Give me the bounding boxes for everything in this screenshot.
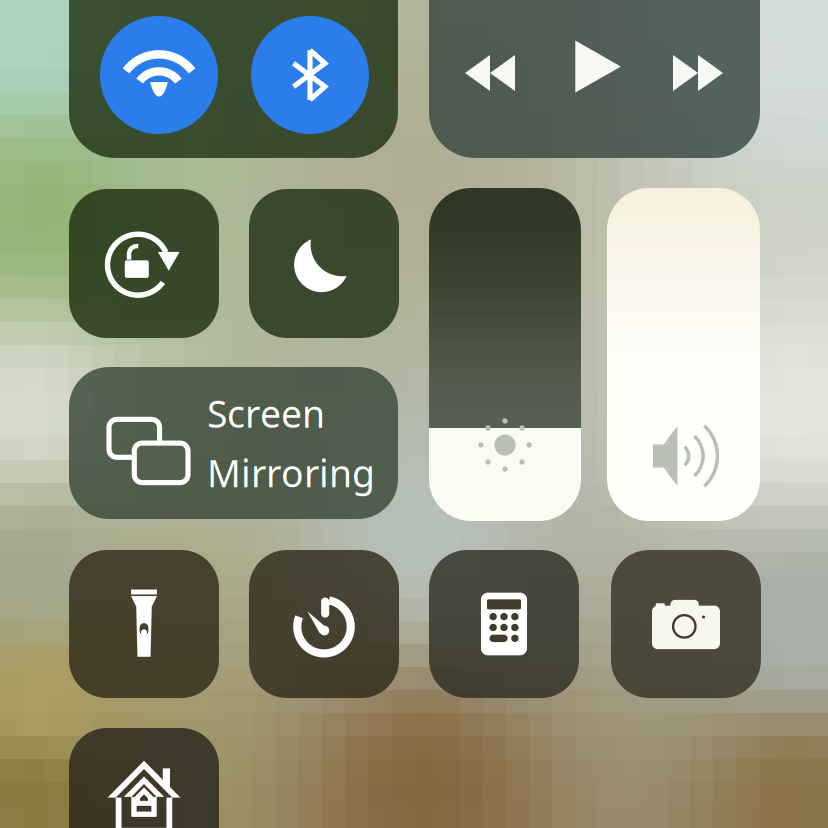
button[interactable]: Calculator: [429, 550, 579, 698]
button[interactable]: Timer: [249, 550, 399, 698]
button[interactable]: Home: [69, 728, 219, 828]
button[interactable]: Screen Mirroring: [69, 367, 398, 519]
staticText: Screen: [207, 388, 325, 438]
button[interactable]: Volume: [607, 188, 760, 521]
button[interactable]: Flashlight: [69, 550, 219, 698]
button[interactable]: Do Not Disturb: [249, 189, 399, 338]
button[interactable]: Connectivity: [69, 0, 398, 158]
button[interactable]: Camera: [611, 550, 761, 698]
button[interactable]: Brightness: [429, 188, 581, 521]
button[interactable]: Rotation Lock: [69, 189, 219, 338]
button[interactable]: Now Playing: [429, 0, 760, 158]
staticText: Mirroring: [207, 448, 375, 498]
